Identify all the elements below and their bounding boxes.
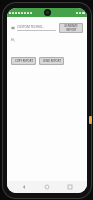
staticText: COPY REPORT (15, 59, 33, 63)
button[interactable]: Back (18, 181, 30, 193)
staticText: SEND REPORT (43, 59, 61, 63)
button[interactable]: COPY REPORT (12, 58, 35, 64)
staticText: Hi, (11, 37, 16, 41)
staticText: CUSTOM TECHNI... (17, 25, 45, 29)
button[interactable]: Home (41, 181, 53, 193)
button[interactable]: CUSTOM TECHNI... (11, 22, 56, 33)
button[interactable]: Recent apps (64, 181, 76, 193)
staticText: REPORT (66, 28, 77, 32)
staticText: GENERATE (64, 24, 78, 28)
button[interactable]: SEND REPORT (40, 58, 63, 64)
button[interactable]: GENERATE (60, 24, 82, 32)
